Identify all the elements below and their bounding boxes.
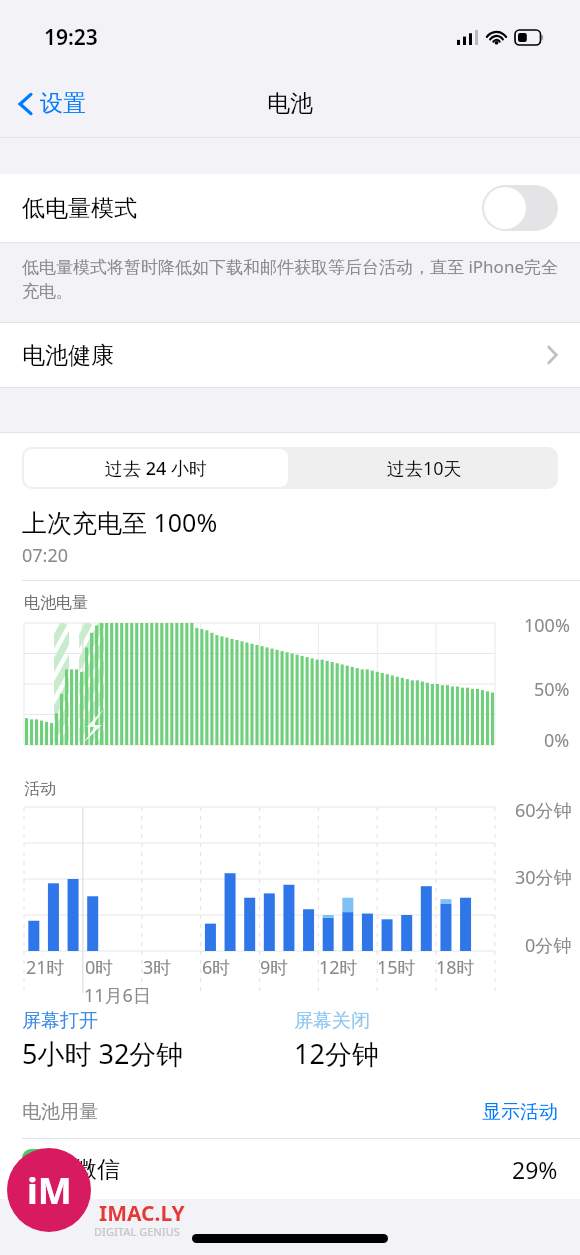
button[interactable]: 过去 24 小时 bbox=[24, 449, 288, 487]
staticText: 低电量模式将暂时降低如下载和邮件获取等后台活动，直至 iPhone完全充电。 bbox=[22, 255, 562, 302]
staticText: 5小时 32分钟 bbox=[22, 1035, 184, 1072]
staticText: 6时 bbox=[202, 955, 231, 980]
staticText: 过去 24 小时 bbox=[105, 456, 207, 481]
staticText: 9时 bbox=[260, 955, 289, 980]
staticText: 0分钟 bbox=[525, 933, 572, 958]
button[interactable]: 显示活动 bbox=[482, 1100, 558, 1124]
button[interactable]: 过去10天 bbox=[290, 447, 558, 489]
button[interactable]: 电池健康 bbox=[0, 323, 580, 387]
button[interactable]: 设置 bbox=[14, 83, 90, 124]
button[interactable]: 微信 bbox=[22, 1139, 558, 1199]
staticText: 15时 bbox=[377, 955, 416, 980]
staticText: 低电量模式 bbox=[22, 194, 137, 223]
staticText: 设置 bbox=[40, 89, 86, 118]
staticText: 19:23 bbox=[44, 23, 98, 52]
staticText: 21时 bbox=[26, 955, 65, 980]
staticText: 上次充电至 100% bbox=[22, 505, 218, 539]
staticText: 微信 bbox=[74, 1155, 120, 1184]
staticText: 3时 bbox=[143, 955, 172, 980]
staticText: 07:20 bbox=[22, 543, 69, 568]
staticText: 30分钟 bbox=[515, 865, 572, 890]
staticText: DIGITAL GENIUS bbox=[94, 1224, 180, 1239]
staticText: 0时 bbox=[85, 955, 114, 980]
staticText: IMAC.LY bbox=[99, 1199, 185, 1228]
button[interactable]: 低电量模式 bbox=[0, 174, 580, 242]
other: 低电量模式开关 bbox=[482, 185, 558, 231]
staticText: 50% bbox=[534, 677, 570, 702]
staticText: 电池 bbox=[267, 89, 313, 118]
staticText: 电池健康 bbox=[22, 341, 114, 370]
staticText: 100% bbox=[524, 613, 570, 638]
staticText: 0% bbox=[544, 728, 570, 753]
staticText: 电池用量 bbox=[22, 1100, 98, 1124]
staticText: 屏幕打开 bbox=[22, 1009, 98, 1033]
staticText: iM bbox=[27, 1166, 72, 1215]
staticText: 29% bbox=[512, 1154, 558, 1185]
button[interactable]: 屏幕关闭 bbox=[294, 1009, 379, 1072]
staticText: 屏幕关闭 bbox=[294, 1009, 370, 1033]
staticText: 活动 bbox=[24, 779, 56, 799]
staticText: 60分钟 bbox=[515, 798, 572, 823]
staticText: 显示活动 bbox=[482, 1100, 558, 1124]
staticText: 电池电量 bbox=[24, 593, 88, 613]
staticText: 12分钟 bbox=[294, 1035, 379, 1072]
button[interactable]: 屏幕打开 bbox=[22, 1009, 294, 1072]
staticText: 18时 bbox=[436, 955, 475, 980]
staticText: 11月6日 bbox=[84, 983, 151, 1008]
staticText: 12时 bbox=[319, 955, 358, 980]
staticText: 过去10天 bbox=[387, 456, 462, 481]
